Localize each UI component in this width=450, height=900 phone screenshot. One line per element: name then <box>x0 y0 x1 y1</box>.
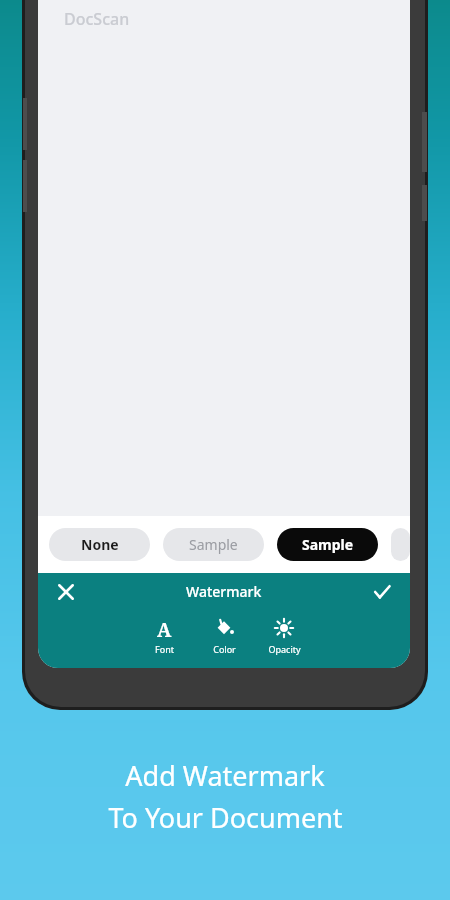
staticText: Font <box>155 643 174 655</box>
button[interactable] <box>391 528 410 561</box>
button[interactable]: None <box>49 528 150 561</box>
staticText: None <box>81 535 119 554</box>
button[interactable]: Sample <box>277 528 378 561</box>
button[interactable]: Sample <box>163 528 264 561</box>
staticText: A <box>157 617 172 639</box>
button[interactable]: A <box>136 616 192 656</box>
staticText: Opacity <box>268 643 301 655</box>
button[interactable]: Color <box>196 616 252 656</box>
button[interactable]: Confirm <box>364 574 400 610</box>
staticText: Color <box>213 643 236 655</box>
staticText: Add Watermark <box>125 757 325 794</box>
staticText: Watermark <box>186 582 262 601</box>
button[interactable]: Close <box>48 574 84 610</box>
staticText: To Your Document <box>108 799 343 836</box>
staticText: DocScan <box>64 8 130 30</box>
staticText: Sample <box>302 535 354 554</box>
staticText: Sample <box>189 535 238 554</box>
button[interactable]: Opacity <box>256 616 312 656</box>
